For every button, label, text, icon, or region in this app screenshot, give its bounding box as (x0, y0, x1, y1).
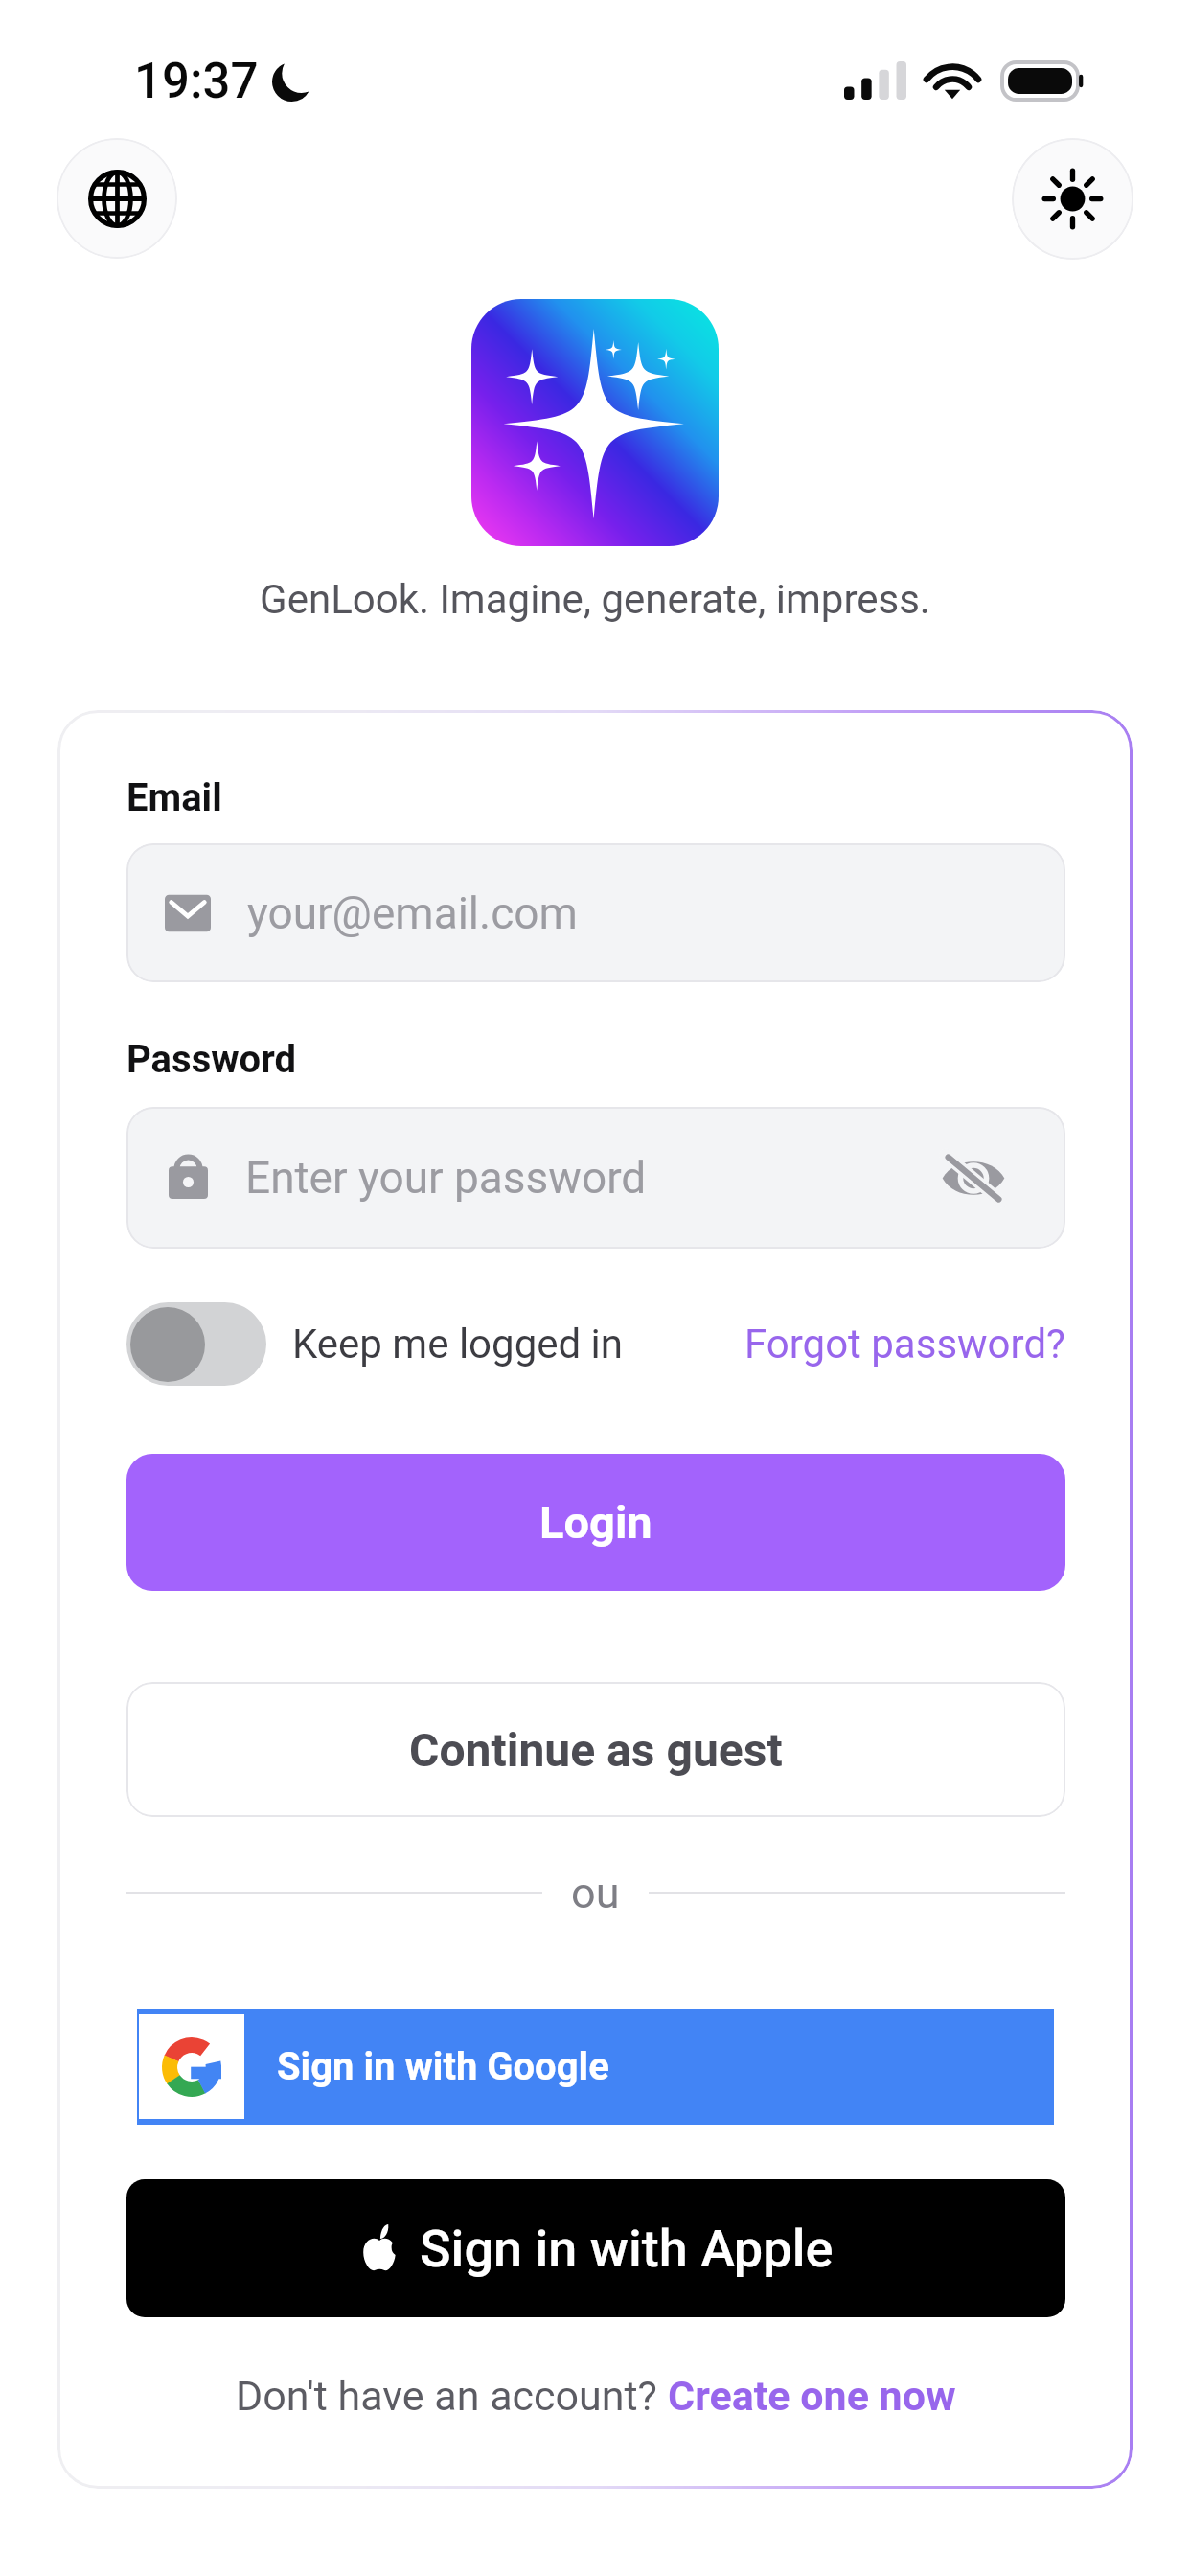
staticText: Password (126, 1037, 297, 1082)
staticText: 19:37 (134, 53, 259, 110)
button[interactable]: Forgot password? (744, 1321, 1065, 1368)
staticText: ou (571, 1868, 620, 1919)
staticText: Enter your password (245, 1152, 940, 1204)
staticText: Login (539, 1496, 652, 1549)
staticText: Don't have an account? (236, 2372, 668, 2420)
staticText: Continue as guest (409, 1723, 783, 1777)
button[interactable]: Toggle light mode (1012, 138, 1133, 260)
button[interactable]: your@email.com (126, 843, 1065, 982)
staticText: Keep me logged in (292, 1321, 624, 1368)
button[interactable]: Show password (940, 1144, 1007, 1211)
button[interactable]: Create one now (668, 2372, 956, 2420)
button[interactable]: Change language (57, 138, 177, 259)
button[interactable]: Sign in with Apple (126, 2179, 1065, 2317)
button[interactable]: Sign in with Google (137, 2009, 1054, 2125)
staticText: Forgot password? (744, 1321, 1065, 1368)
button[interactable]: Login (126, 1454, 1065, 1591)
button[interactable]: Continue as guest (126, 1682, 1065, 1817)
staticText: Sign in with Apple (420, 2219, 834, 2279)
button[interactable]: Keep me logged in (126, 1302, 624, 1386)
staticText: Sign in with Google (277, 2044, 609, 2089)
staticText: Email (126, 775, 222, 820)
button[interactable]: Enter your password (126, 1107, 1065, 1249)
staticText: Create one now (668, 2372, 956, 2420)
staticText: GenLook. Imagine, generate, impress. (0, 576, 1190, 623)
staticText: your@email.com (247, 887, 1007, 939)
